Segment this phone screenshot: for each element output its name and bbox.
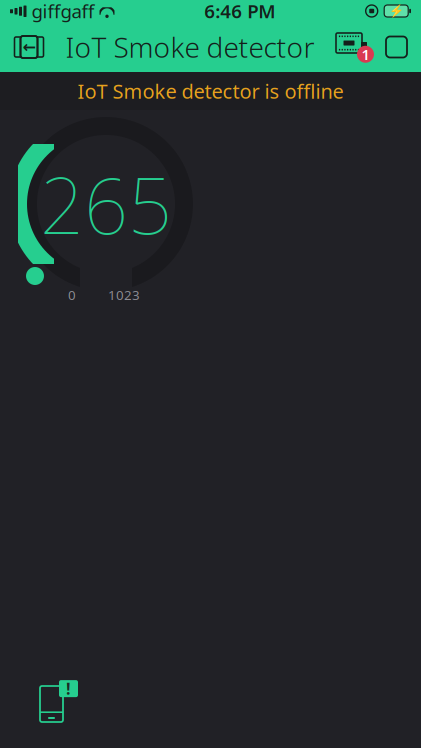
button[interactable]: Devices, 1 alert — [328, 30, 378, 64]
button[interactable]: Notifications — [28, 666, 90, 734]
staticText: IoT Smoke detector is offline — [77, 78, 343, 104]
staticText: ← — [22, 38, 35, 56]
staticText: 265 — [40, 153, 172, 255]
staticText: 0 — [68, 286, 76, 304]
button[interactable]: Log out — [6, 25, 52, 69]
staticText: IoT Smoke detector — [65, 28, 314, 66]
staticText: giffgaff — [31, 0, 94, 23]
staticText: 6:46 PM — [204, 0, 275, 23]
staticText: 1 — [361, 44, 369, 64]
staticText: ! — [66, 678, 71, 699]
button[interactable]: Dashboard — [378, 26, 415, 67]
staticText: 1023 — [108, 286, 140, 304]
staticText: ⚡ — [389, 4, 404, 18]
